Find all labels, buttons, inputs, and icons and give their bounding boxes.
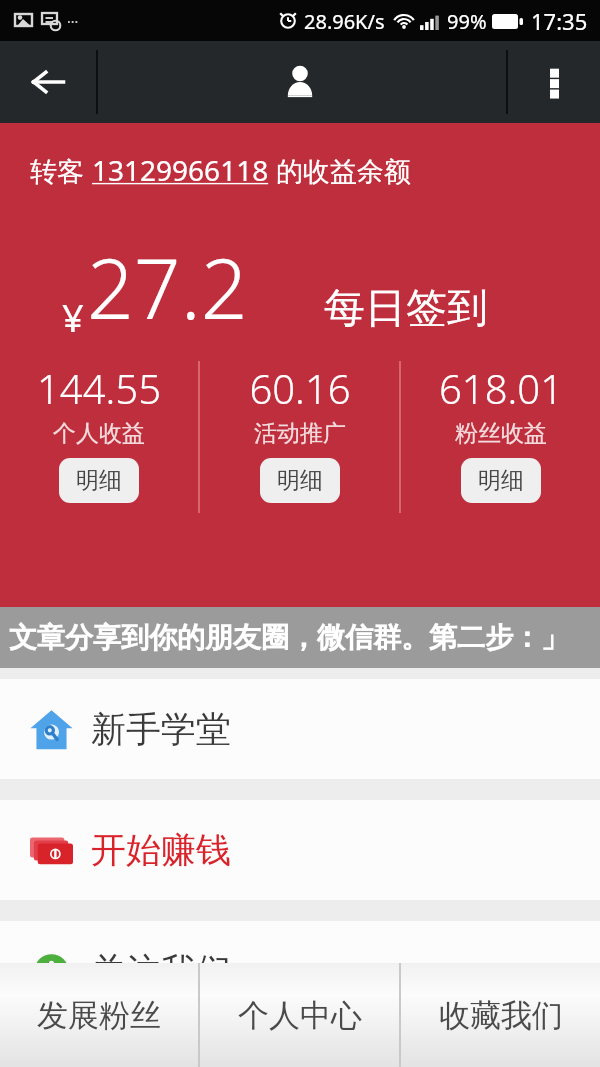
button[interactable]: More options <box>508 41 600 123</box>
staticText: 144.55 <box>37 361 161 415</box>
staticText: 27.2 <box>87 231 248 343</box>
button[interactable]: 明细 <box>260 458 340 503</box>
staticText: 28.96K/s <box>304 8 385 35</box>
button[interactable]: Profile <box>235 41 365 123</box>
button[interactable]: 收藏我们 <box>401 963 600 1067</box>
staticText: 17:35 <box>531 6 588 36</box>
staticText: 每日签到 <box>324 283 488 335</box>
staticText: 转客 <box>30 152 92 189</box>
staticText: 新手学堂 <box>91 707 231 751</box>
button[interactable]: 个人中心 <box>200 963 399 1067</box>
staticText: 活动推广 <box>254 419 346 448</box>
button[interactable]: 开始赚钱 <box>0 800 600 900</box>
staticText: 个人中心 <box>238 996 362 1035</box>
staticText: ··· <box>67 12 79 31</box>
staticText: 发展粉丝 <box>37 996 161 1035</box>
button[interactable]: 每日签到 <box>324 283 488 343</box>
staticText: 明细 <box>277 466 323 495</box>
staticText: 99% <box>447 8 487 35</box>
button[interactable]: 新手学堂 <box>0 679 600 779</box>
staticText: 明细 <box>76 466 122 495</box>
staticText: 的收益余额 <box>269 152 412 189</box>
button[interactable]: 明细 <box>461 458 541 503</box>
button[interactable]: 关注我们 <box>0 921 600 1021</box>
staticText: 粉丝收益 <box>455 419 547 448</box>
staticText: 关注我们 <box>91 949 231 993</box>
staticText: ¥ <box>62 291 84 343</box>
button[interactable]: 明细 <box>59 458 139 503</box>
staticText: 13129966118 <box>92 151 269 189</box>
staticText: 618.01 <box>439 361 563 415</box>
staticText: 个人收益 <box>53 419 145 448</box>
button[interactable]: 文章分享到你的朋友圈，微信群。第二步：」 <box>0 607 600 668</box>
button[interactable]: 发展粉丝 <box>0 963 198 1067</box>
staticText: 文章分享到你的朋友圈，微信群。第二步：」 <box>9 620 569 655</box>
staticText: 开始赚钱 <box>91 828 231 872</box>
staticText: 60.16 <box>249 361 351 415</box>
staticText: 收藏我们 <box>439 996 563 1035</box>
staticText: 明细 <box>478 466 524 495</box>
button[interactable]: Back <box>0 41 96 123</box>
